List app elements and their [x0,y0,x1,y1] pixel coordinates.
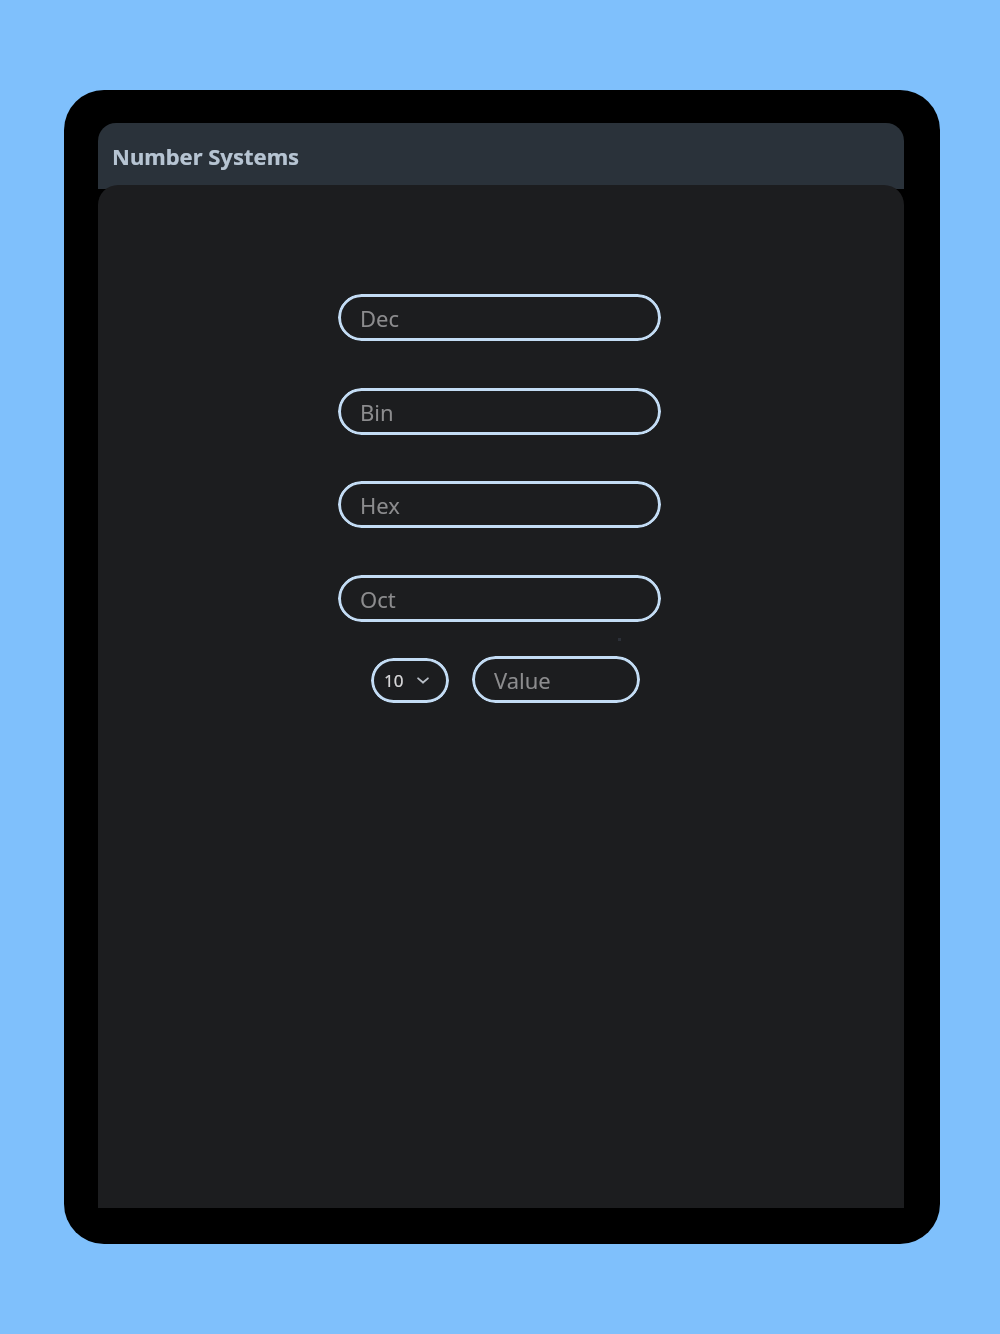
button[interactable]: Dec [338,294,661,341]
staticText: Dec [360,303,400,333]
staticText: Oct [360,584,396,614]
staticText: Bin [360,397,394,427]
staticText: Hex [360,490,400,520]
button[interactable]: Value [472,656,640,703]
staticText: Value [494,665,551,695]
staticText: 10 [384,669,404,692]
button[interactable]: Select number base [371,658,449,703]
button[interactable]: Hex [338,481,661,528]
button[interactable]: Bin [338,388,661,435]
button[interactable]: Oct [338,575,661,622]
staticText: Number Systems [112,141,300,171]
